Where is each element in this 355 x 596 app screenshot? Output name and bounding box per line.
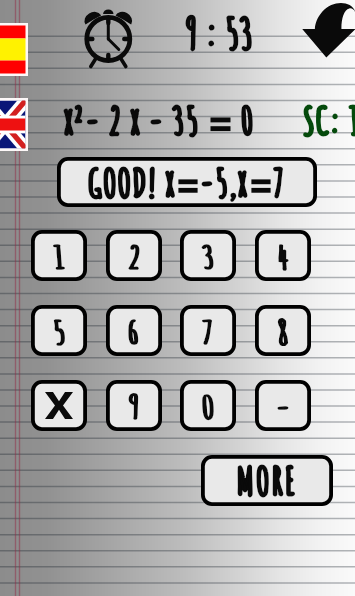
staticText: 6 (128, 311, 140, 351)
staticText: MORE (237, 457, 298, 504)
button[interactable]: Spanish language (0, 23, 28, 76)
staticText: 2 (127, 236, 142, 276)
button[interactable]: 3 (180, 230, 236, 281)
button[interactable]: - (255, 380, 311, 431)
button[interactable]: 8 (255, 305, 311, 356)
staticText: x²- 2 x - 35 (64, 96, 208, 144)
staticText: 7 (202, 311, 214, 351)
button[interactable]: 4 (255, 230, 311, 281)
staticText: 3 (201, 236, 216, 276)
button[interactable]: Timer (76, 4, 140, 66)
button[interactable]: MORE (201, 455, 333, 506)
staticText: SC: 1 (303, 96, 355, 144)
staticText: 9 : 53 (186, 6, 254, 59)
staticText: 8 (276, 311, 291, 351)
button[interactable] (31, 380, 87, 431)
staticText: -5,x (200, 159, 249, 206)
staticText: 5 (52, 311, 67, 351)
button[interactable]: 5 (31, 305, 87, 356)
staticText: 7 (273, 159, 286, 206)
staticText: 0 (233, 96, 255, 144)
staticText: - (275, 386, 292, 426)
staticText: x²- 2 x - 35 (64, 96, 208, 144)
button[interactable]: 2 (106, 230, 162, 281)
staticText: 3 (201, 236, 216, 276)
staticText: 9 : 53 (186, 6, 254, 59)
staticText: 2 (127, 236, 142, 276)
button[interactable]: Next problem (300, 0, 355, 58)
staticText: 7 (202, 311, 214, 351)
staticText: 4 (277, 236, 289, 276)
staticText: 5 (52, 311, 67, 351)
staticText: GOOD! x (88, 159, 176, 206)
staticText: 1 (54, 236, 65, 276)
staticText: 4 (277, 236, 289, 276)
staticText: SC: 1 (303, 96, 355, 144)
button[interactable]: 0 (180, 380, 236, 431)
staticText: 0 (201, 386, 216, 426)
staticText: 1 (54, 236, 65, 276)
staticText: 7 (273, 159, 286, 206)
staticText: 9 (129, 386, 140, 426)
staticText: MORE (237, 457, 298, 504)
button[interactable]: GOOD! x (57, 157, 317, 207)
staticText: 6 (128, 311, 140, 351)
staticText: 0 (201, 386, 216, 426)
staticText: 9 (129, 386, 140, 426)
button[interactable]: English language (0, 98, 28, 151)
button[interactable]: 7 (180, 305, 236, 356)
button[interactable]: 6 (106, 305, 162, 356)
staticText: 8 (276, 311, 291, 351)
button[interactable]: 1 (31, 230, 87, 281)
staticText: GOOD! x (88, 159, 176, 206)
staticText: - (275, 386, 292, 426)
button[interactable]: 9 (106, 380, 162, 431)
staticText: 0 (233, 96, 255, 144)
staticText: -5,x (200, 159, 249, 206)
